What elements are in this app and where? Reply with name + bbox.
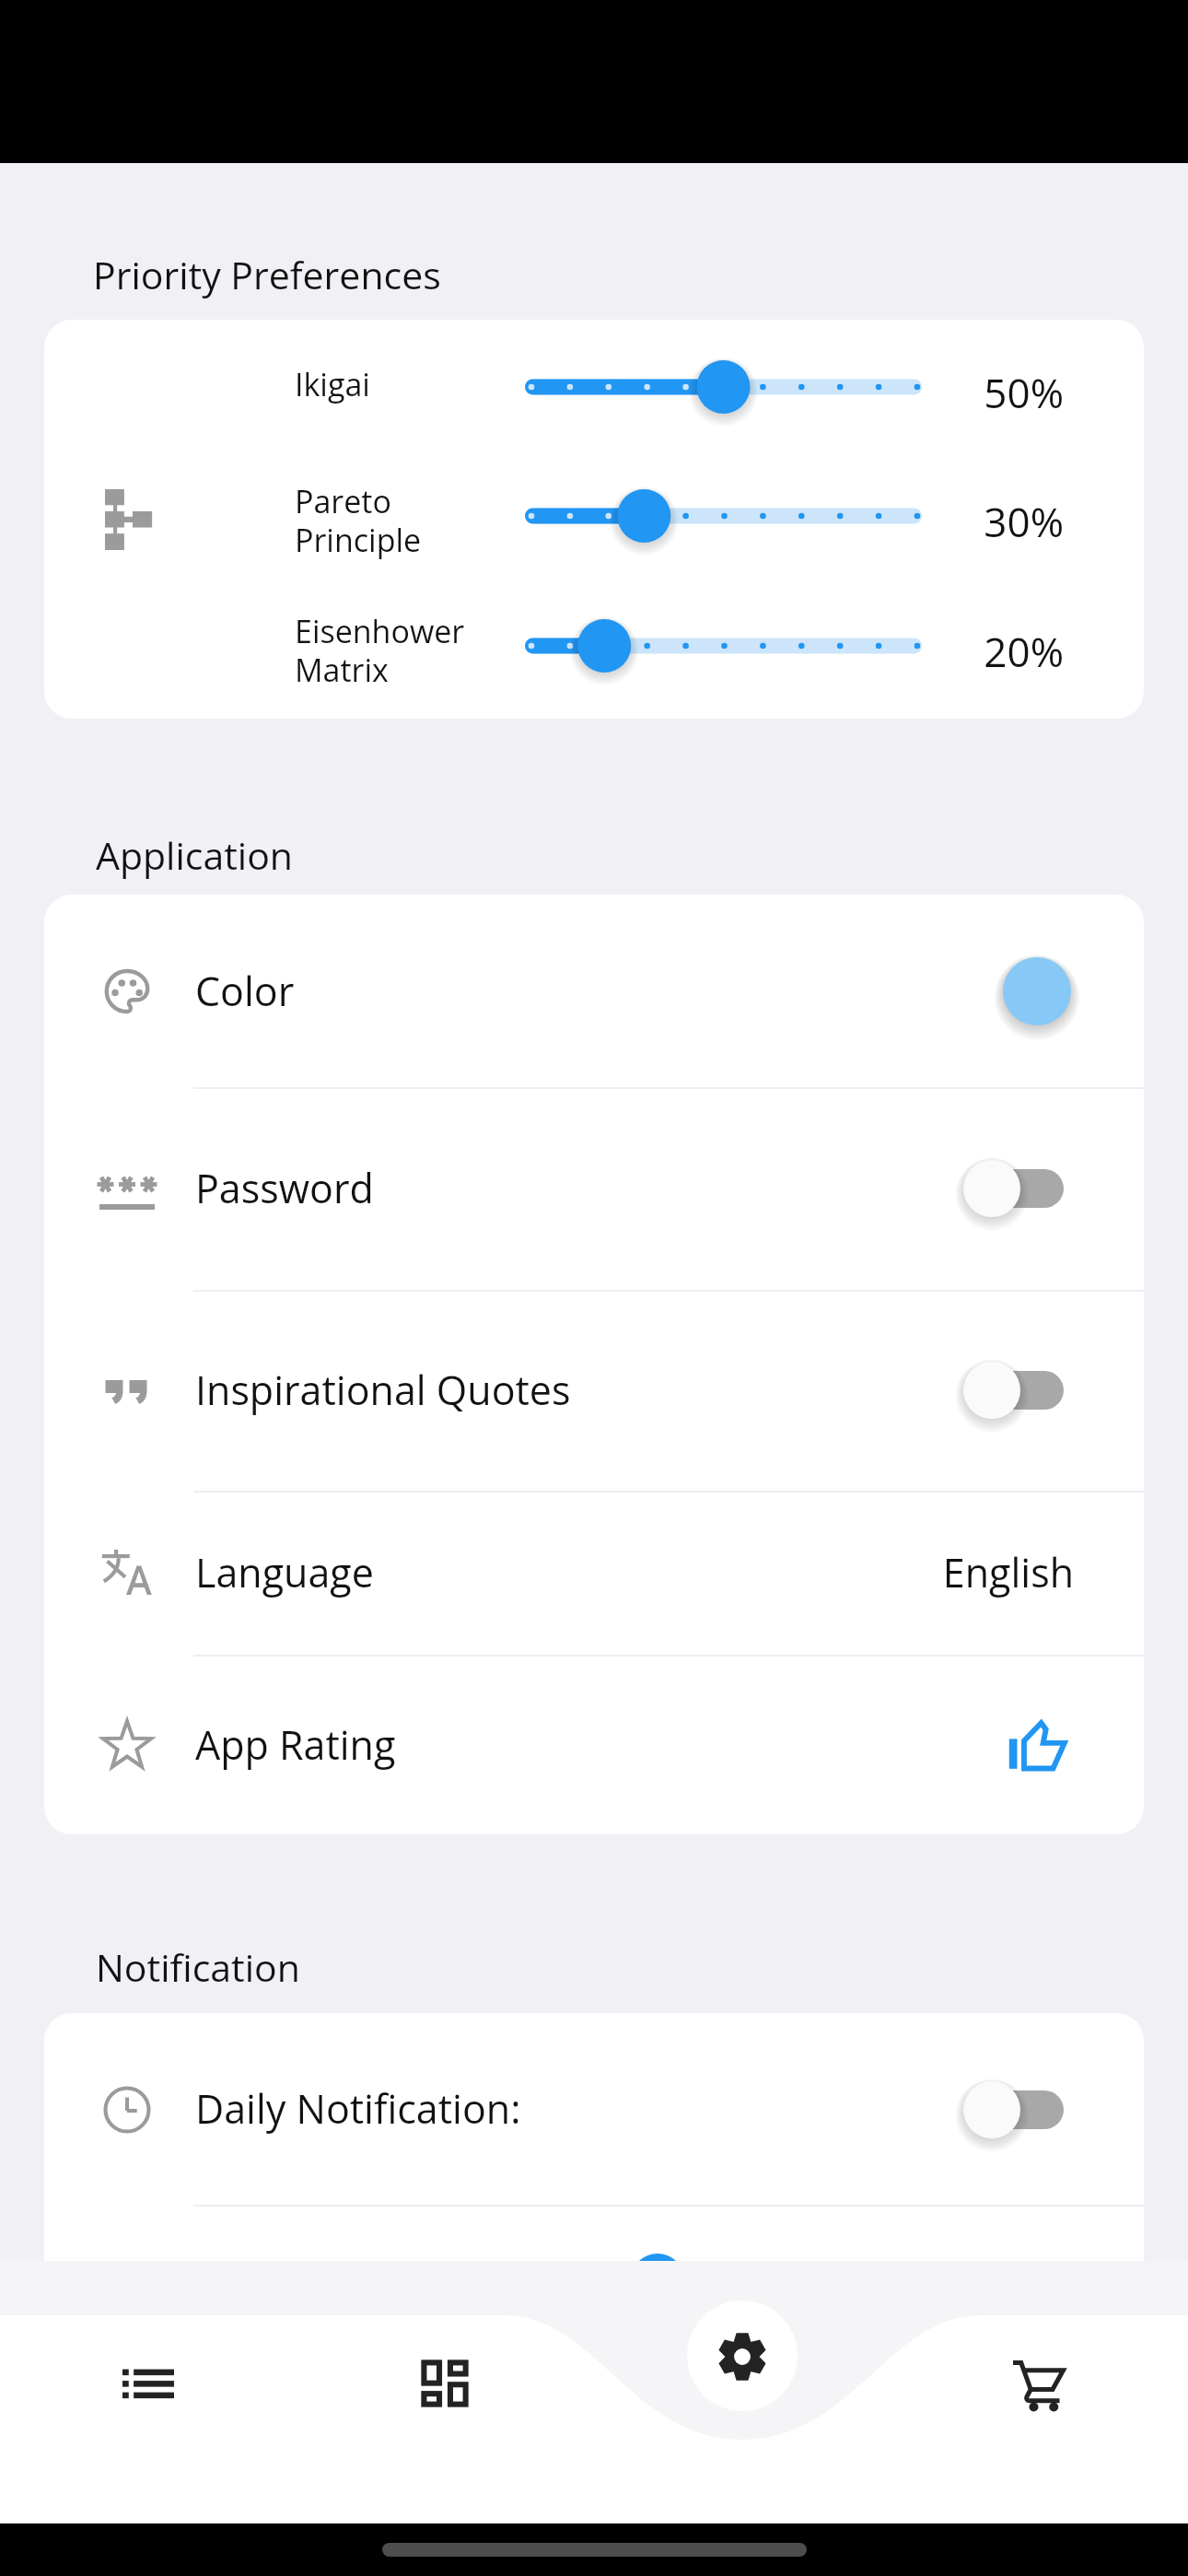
button[interactable]: Toggle bbox=[954, 1147, 1074, 1230]
button[interactable]: Inspirational Quotes bbox=[44, 1290, 1144, 1491]
staticText: Color bbox=[195, 964, 295, 1018]
staticText: Language bbox=[195, 1545, 374, 1599]
button[interactable]: App Rating bbox=[44, 1655, 1144, 1834]
button[interactable]: Toggle bbox=[954, 2068, 1074, 2151]
button[interactable]: Shopping cart bbox=[891, 2315, 1188, 2523]
staticText: 50% bbox=[958, 365, 1064, 420]
button[interactable]: Settings bbox=[593, 2315, 891, 2523]
button[interactable]: Password bbox=[44, 1087, 1144, 1290]
button[interactable]: Daily Notification: bbox=[44, 2013, 1144, 2205]
button[interactable]: Color bbox=[44, 895, 1144, 1087]
button[interactable]: Toggle bbox=[954, 1349, 1074, 1432]
staticText: Ikigai bbox=[295, 363, 507, 405]
button[interactable]: Slider bbox=[497, 591, 958, 701]
staticText: English bbox=[875, 1545, 1074, 1599]
button[interactable]: Pick colour bbox=[991, 945, 1083, 1037]
button[interactable]: Slider bbox=[497, 461, 958, 571]
button[interactable]: Language bbox=[44, 1491, 1144, 1655]
staticText: Inspirational Quotes bbox=[195, 1363, 571, 1417]
staticText: 30% bbox=[958, 494, 1064, 549]
staticText: 20% bbox=[958, 624, 1064, 679]
button[interactable]: List bbox=[0, 2315, 297, 2523]
staticText: Pareto Principle bbox=[295, 480, 507, 561]
button[interactable]: Slider bbox=[497, 332, 958, 442]
staticText: Application bbox=[96, 829, 293, 881]
staticText: Notification bbox=[96, 1941, 300, 1993]
staticText: Eisenhower Matrix bbox=[295, 610, 507, 691]
staticText: Password bbox=[195, 1161, 374, 1215]
staticText: Priority Preferences bbox=[93, 249, 441, 300]
staticText: App Rating bbox=[195, 1717, 396, 1772]
staticText: Daily Notification: bbox=[195, 2081, 521, 2136]
button[interactable]: Dashboard bbox=[297, 2315, 593, 2523]
